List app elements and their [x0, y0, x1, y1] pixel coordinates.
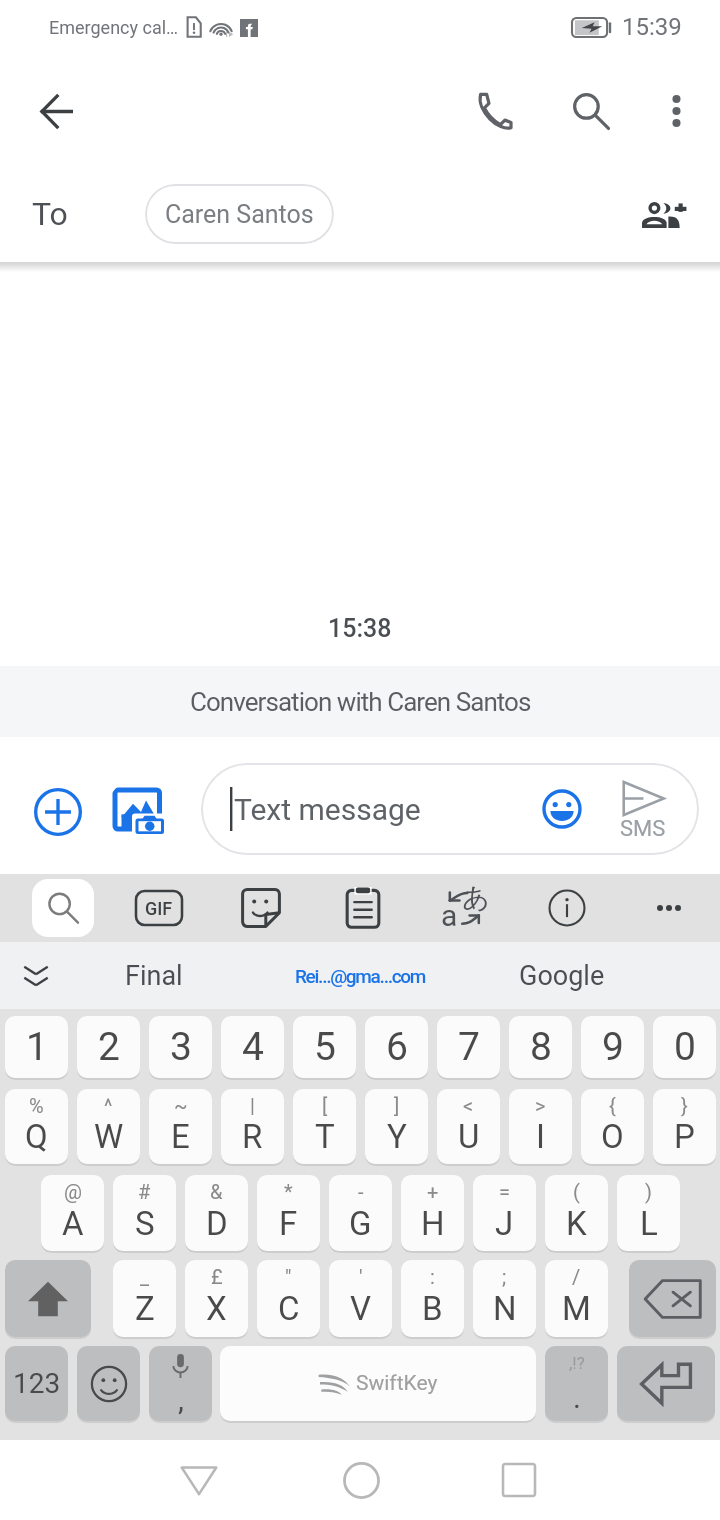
button[interactable]: Back [151, 1440, 247, 1520]
button[interactable]: 3 [149, 1016, 212, 1078]
button[interactable]: sticker [210, 874, 312, 942]
button[interactable]: > [509, 1089, 572, 1164]
button[interactable]: % [5, 1089, 68, 1164]
button[interactable]: 6 [365, 1016, 428, 1078]
staticText: a [441, 898, 458, 933]
staticText: } [681, 1094, 688, 1117]
staticText: Q [25, 1117, 48, 1156]
button[interactable]: 0 [653, 1016, 716, 1078]
button[interactable]: Shift [5, 1260, 91, 1337]
staticText: S [135, 1204, 155, 1243]
button[interactable]: Period [545, 1346, 608, 1421]
button[interactable]: Add people [630, 180, 698, 248]
staticText: / [572, 1265, 581, 1288]
staticText: = [499, 1180, 510, 1203]
button[interactable]: translate [414, 874, 516, 942]
staticText: * [284, 1180, 293, 1203]
button[interactable]: info [516, 874, 618, 942]
staticText: M [562, 1289, 591, 1328]
button[interactable]: Collapse keyboard [12, 952, 60, 1000]
button[interactable]: More options [639, 74, 713, 148]
button[interactable]: 8 [509, 1016, 572, 1078]
staticText: " [285, 1265, 292, 1288]
staticText: V [350, 1289, 372, 1328]
button[interactable]: Caren Santos [145, 184, 334, 244]
button[interactable]: ^ [77, 1089, 140, 1164]
button[interactable]: < [437, 1089, 500, 1164]
button[interactable]: Backspace [629, 1260, 716, 1337]
staticText: Y [387, 1117, 407, 1156]
button[interactable]: - [329, 1175, 392, 1251]
button[interactable]: 1 [5, 1016, 68, 1078]
button[interactable]: # [113, 1175, 176, 1251]
staticText: < [463, 1094, 474, 1117]
staticText: J [495, 1204, 514, 1243]
button[interactable]: ( [545, 1175, 608, 1251]
button[interactable]: ' [329, 1260, 392, 1337]
staticText: 8 [530, 1024, 552, 1070]
button[interactable]: " [257, 1260, 320, 1337]
button[interactable]: Voice input [149, 1346, 212, 1421]
button[interactable]: Search [554, 74, 628, 148]
button[interactable]: Numbers [5, 1346, 68, 1421]
button[interactable]: clipboard [312, 874, 414, 942]
button[interactable]: ] [365, 1089, 428, 1164]
button[interactable]: = [473, 1175, 536, 1251]
button[interactable]: Enter [617, 1346, 715, 1421]
button[interactable]: / [545, 1260, 608, 1337]
button[interactable]: ; [473, 1260, 536, 1337]
staticText: 123 [13, 1367, 61, 1400]
button[interactable]: * [257, 1175, 320, 1251]
button[interactable]: Emoji [77, 1346, 140, 1421]
staticText: X [206, 1289, 227, 1328]
staticText: ~ [174, 1094, 188, 1117]
staticText: . [573, 1380, 581, 1415]
button[interactable]: Search [32, 879, 94, 937]
staticText: { [609, 1094, 616, 1117]
button[interactable]: ~ [149, 1089, 212, 1164]
button[interactable]: GIF [108, 874, 210, 942]
button[interactable]: { [581, 1089, 644, 1164]
button[interactable]: Rei…@gma…com [255, 942, 465, 1009]
staticText: Z [135, 1289, 155, 1328]
staticText: > [535, 1094, 546, 1117]
button[interactable]: 7 [437, 1016, 500, 1078]
button[interactable]: Space [220, 1346, 536, 1421]
button[interactable]: Emoji [529, 776, 595, 842]
button[interactable]: + [401, 1175, 464, 1251]
button[interactable]: Send picture [106, 778, 174, 846]
staticText: F [279, 1204, 298, 1243]
button[interactable]: Final [68, 942, 240, 1009]
button[interactable]: Home [313, 1440, 409, 1520]
staticText: : [430, 1265, 435, 1288]
staticText: Caren Santos [165, 200, 314, 229]
button[interactable]: 2 [77, 1016, 140, 1078]
button[interactable]: Recents [471, 1440, 567, 1520]
button[interactable]: & [185, 1175, 248, 1251]
button[interactable]: Text message [201, 763, 699, 855]
button[interactable]: : [401, 1260, 464, 1337]
button[interactable]: £ [185, 1260, 248, 1337]
button[interactable]: | [221, 1089, 284, 1164]
button[interactable]: 5 [293, 1016, 356, 1078]
button[interactable]: ) [617, 1175, 680, 1251]
button[interactable]: Back [22, 77, 90, 145]
button[interactable]: } [653, 1089, 716, 1164]
button[interactable]: Call [455, 74, 529, 148]
staticText: A [62, 1204, 84, 1243]
staticText: L [640, 1204, 658, 1243]
button[interactable]: Send SMS [602, 763, 684, 855]
button[interactable]: Add attachment [24, 778, 92, 846]
staticText: 4 [242, 1024, 264, 1070]
button[interactable]: more [618, 874, 720, 942]
button[interactable]: Google [478, 942, 646, 1009]
staticText: あ [462, 881, 490, 915]
button[interactable]: 4 [221, 1016, 284, 1078]
button[interactable]: [ [293, 1089, 356, 1164]
button[interactable]: _ [113, 1260, 176, 1337]
button[interactable]: @ [41, 1175, 104, 1251]
staticText: @ [64, 1180, 82, 1203]
staticText: N [493, 1289, 517, 1328]
staticText: 6 [386, 1024, 408, 1070]
button[interactable]: 9 [581, 1016, 644, 1078]
